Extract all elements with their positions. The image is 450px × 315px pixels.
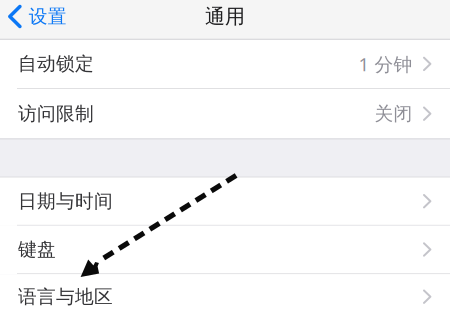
staticText: 1 分钟 — [358, 51, 412, 76]
staticText: 键盘 — [18, 238, 56, 261]
button[interactable]: 设置 — [0, 0, 75, 33]
button[interactable]: 语言与地区 — [0, 274, 450, 315]
staticText: 自动锁定 — [18, 52, 94, 75]
staticText: 语言与地区 — [18, 285, 113, 308]
staticText: 日期与时间 — [18, 190, 113, 213]
button[interactable]: 键盘 — [0, 226, 450, 274]
button[interactable]: 访问限制 — [0, 89, 450, 138]
button[interactable]: 日期与时间 — [0, 178, 450, 226]
staticText: 访问限制 — [18, 102, 94, 125]
button[interactable]: 自动锁定 — [0, 40, 450, 89]
staticText: 设置 — [29, 5, 67, 28]
staticText: 通用 — [205, 4, 245, 29]
staticText: 关闭 — [374, 102, 412, 125]
